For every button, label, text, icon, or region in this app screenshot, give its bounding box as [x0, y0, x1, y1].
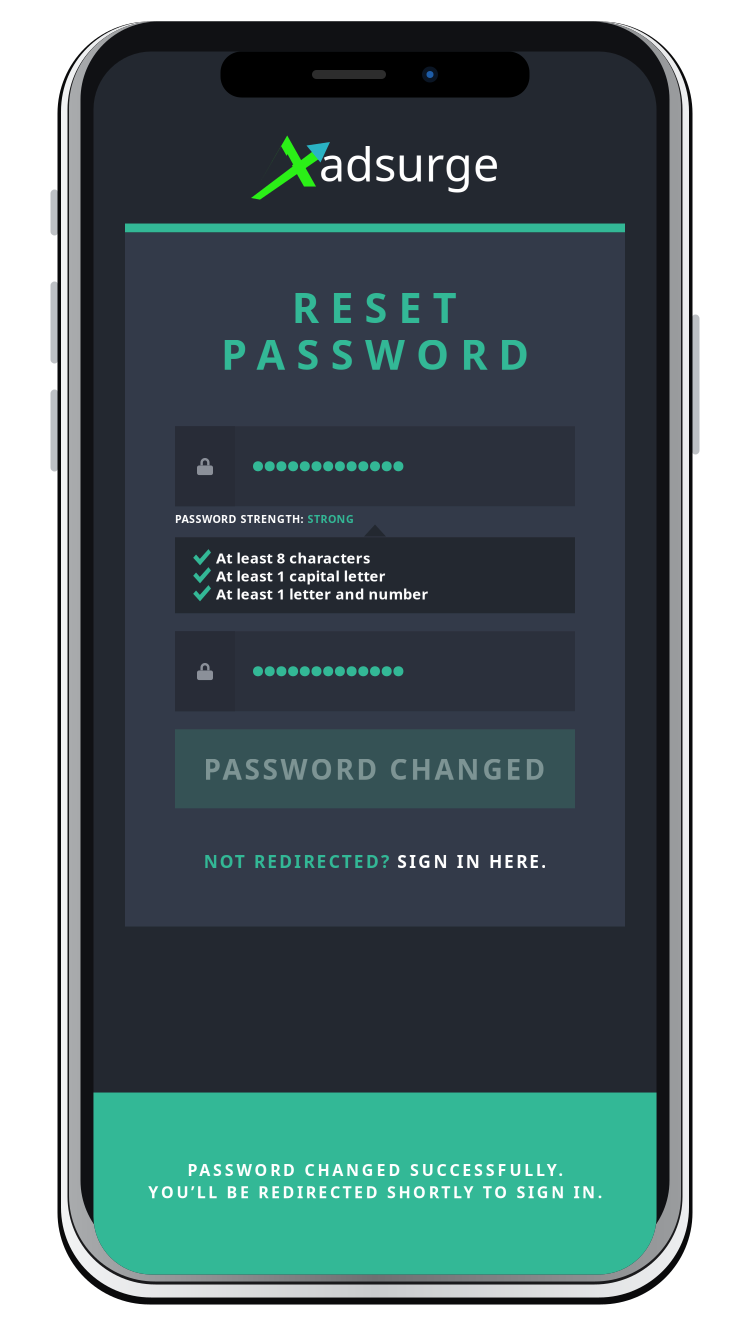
staticText: At least 1 letter and number [216, 584, 428, 603]
staticText: PASSWORD STRENGTH: [175, 512, 303, 526]
staticText: RESET [292, 279, 479, 334]
staticText: STRONG [307, 512, 354, 526]
staticText: adsurge [319, 132, 499, 194]
staticText: PASSWORD CHANGED SUCCESSFULLY. [187, 1159, 563, 1180]
staticText: At least 8 characters [216, 548, 370, 567]
button[interactable]: PASSWORD CHANGED [175, 729, 575, 808]
staticText: PASSWORD CHANGED [203, 750, 554, 787]
staticText: SIGN IN HERE. [397, 850, 546, 873]
staticText: NOT REDIRECTED? [204, 850, 396, 873]
button[interactable]: NOT REDIRECTED? [125, 850, 625, 872]
staticText: YOU’LL BE REDIRECTED SHORTLY TO SIGN IN. [148, 1181, 602, 1203]
staticText: At least 1 capital letter [216, 566, 386, 585]
staticText: PASSWORD [221, 326, 551, 381]
